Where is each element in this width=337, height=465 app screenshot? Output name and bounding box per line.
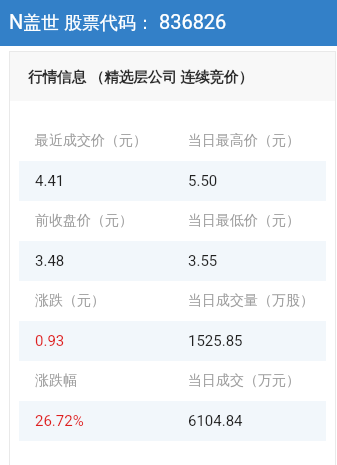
button[interactable]: 0.93: [19, 321, 326, 361]
staticText: 涨跌幅: [35, 372, 77, 390]
staticText: 26.72%: [35, 412, 84, 430]
staticText: 1525.85: [188, 332, 243, 350]
staticText: 5.50: [188, 172, 218, 190]
staticText: 当日成交量（万股）: [188, 292, 314, 310]
staticText: 最近成交价（元）: [35, 132, 147, 150]
staticText: 当日最高价（元）: [188, 132, 300, 150]
staticText: 6104.84: [188, 412, 243, 430]
button[interactable]: 4.41: [19, 161, 326, 201]
staticText: 行情信息 （精选层公司 连续竞价）: [28, 66, 254, 86]
staticText: 4.41: [35, 172, 65, 190]
button[interactable]: 涨跌幅: [19, 361, 326, 401]
staticText: 3.55: [188, 252, 218, 270]
button[interactable]: N盖世 股票代码： 836826: [0, 0, 337, 46]
staticText: 涨跌（元）: [35, 292, 105, 310]
staticText: N盖世 股票代码： 836826: [9, 10, 227, 35]
staticText: 当日最低价（元）: [188, 212, 300, 230]
staticText: 当日成交（万元）: [188, 372, 300, 390]
button[interactable]: 26.72%: [19, 401, 326, 441]
button[interactable]: 前收盘价（元）: [19, 201, 326, 241]
button[interactable]: 最近成交价（元）: [19, 121, 326, 161]
button[interactable]: 涨跌（元）: [19, 281, 326, 321]
staticText: 0.93: [35, 332, 65, 350]
staticText: 3.48: [35, 252, 65, 270]
staticText: 前收盘价（元）: [35, 212, 133, 230]
button[interactable]: 3.48: [19, 241, 326, 281]
